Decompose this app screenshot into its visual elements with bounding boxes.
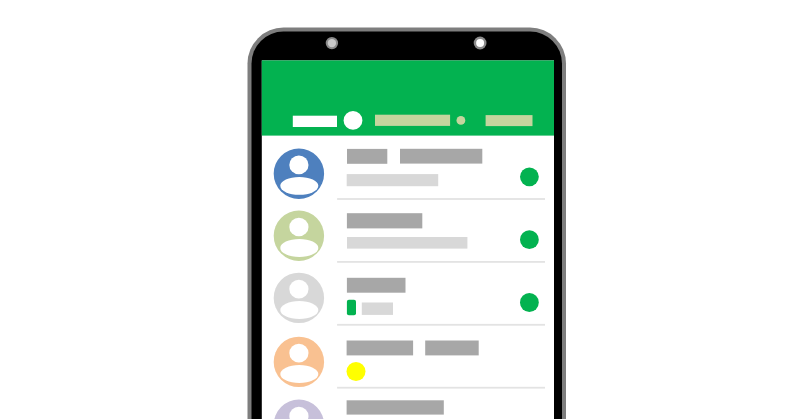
button[interactable]: App title — [293, 108, 337, 134]
button[interactable]: Contact 4 — [262, 325, 554, 388]
button[interactable]: Tab one — [370, 108, 455, 134]
button[interactable]: More options — [455, 108, 467, 134]
button[interactable]: Contact 5 — [262, 388, 554, 419]
button[interactable]: Tab two — [480, 108, 538, 134]
button[interactable]: Contact 2 — [262, 199, 554, 262]
button[interactable]: Contact 1 — [262, 136, 554, 199]
button[interactable]: Contact 3 — [262, 262, 554, 325]
button[interactable]: Search — [340, 108, 366, 134]
